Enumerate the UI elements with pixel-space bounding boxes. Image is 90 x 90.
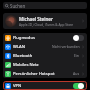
button[interactable]: Cellular — [3, 60, 87, 69]
other: Wifi — [5, 44, 11, 50]
staticText: WLAN — [13, 44, 52, 50]
other: Cellular — [5, 62, 11, 68]
button[interactable]: Hotspot — [3, 69, 87, 78]
staticText: Flugmodus — [13, 35, 73, 41]
staticText: VPN — [13, 83, 73, 89]
staticText: Persönlicher Hotspot — [13, 71, 73, 77]
other: Bluetooth — [5, 53, 11, 59]
staticText: Aus — [73, 71, 80, 76]
button[interactable]: Airplane — [3, 33, 87, 42]
button[interactable]: Switch off — [73, 35, 84, 41]
button[interactable]: Suchen — [3, 2, 87, 9]
staticText: Michael Steiner — [19, 16, 53, 22]
staticText: Mobiles Netz — [13, 62, 81, 68]
other: Vpn — [5, 83, 11, 89]
button[interactable]: Switch on — [73, 83, 84, 89]
button[interactable]: Wifi — [3, 42, 87, 51]
staticText: Ein — [74, 53, 80, 58]
staticText: Suchen — [10, 3, 26, 9]
staticText: Apple-ID, iCloud, iTunes & App Store — [19, 23, 74, 27]
other: Airplane — [5, 35, 11, 41]
staticText: Nicht verbunden — [52, 44, 80, 49]
other: Hotspot — [5, 71, 11, 77]
button[interactable]: Michael Steiner — [3, 13, 87, 29]
button[interactable]: Vpn — [3, 81, 87, 90]
button[interactable]: Bluetooth — [3, 51, 87, 60]
staticText: Bluetooth — [13, 53, 74, 59]
